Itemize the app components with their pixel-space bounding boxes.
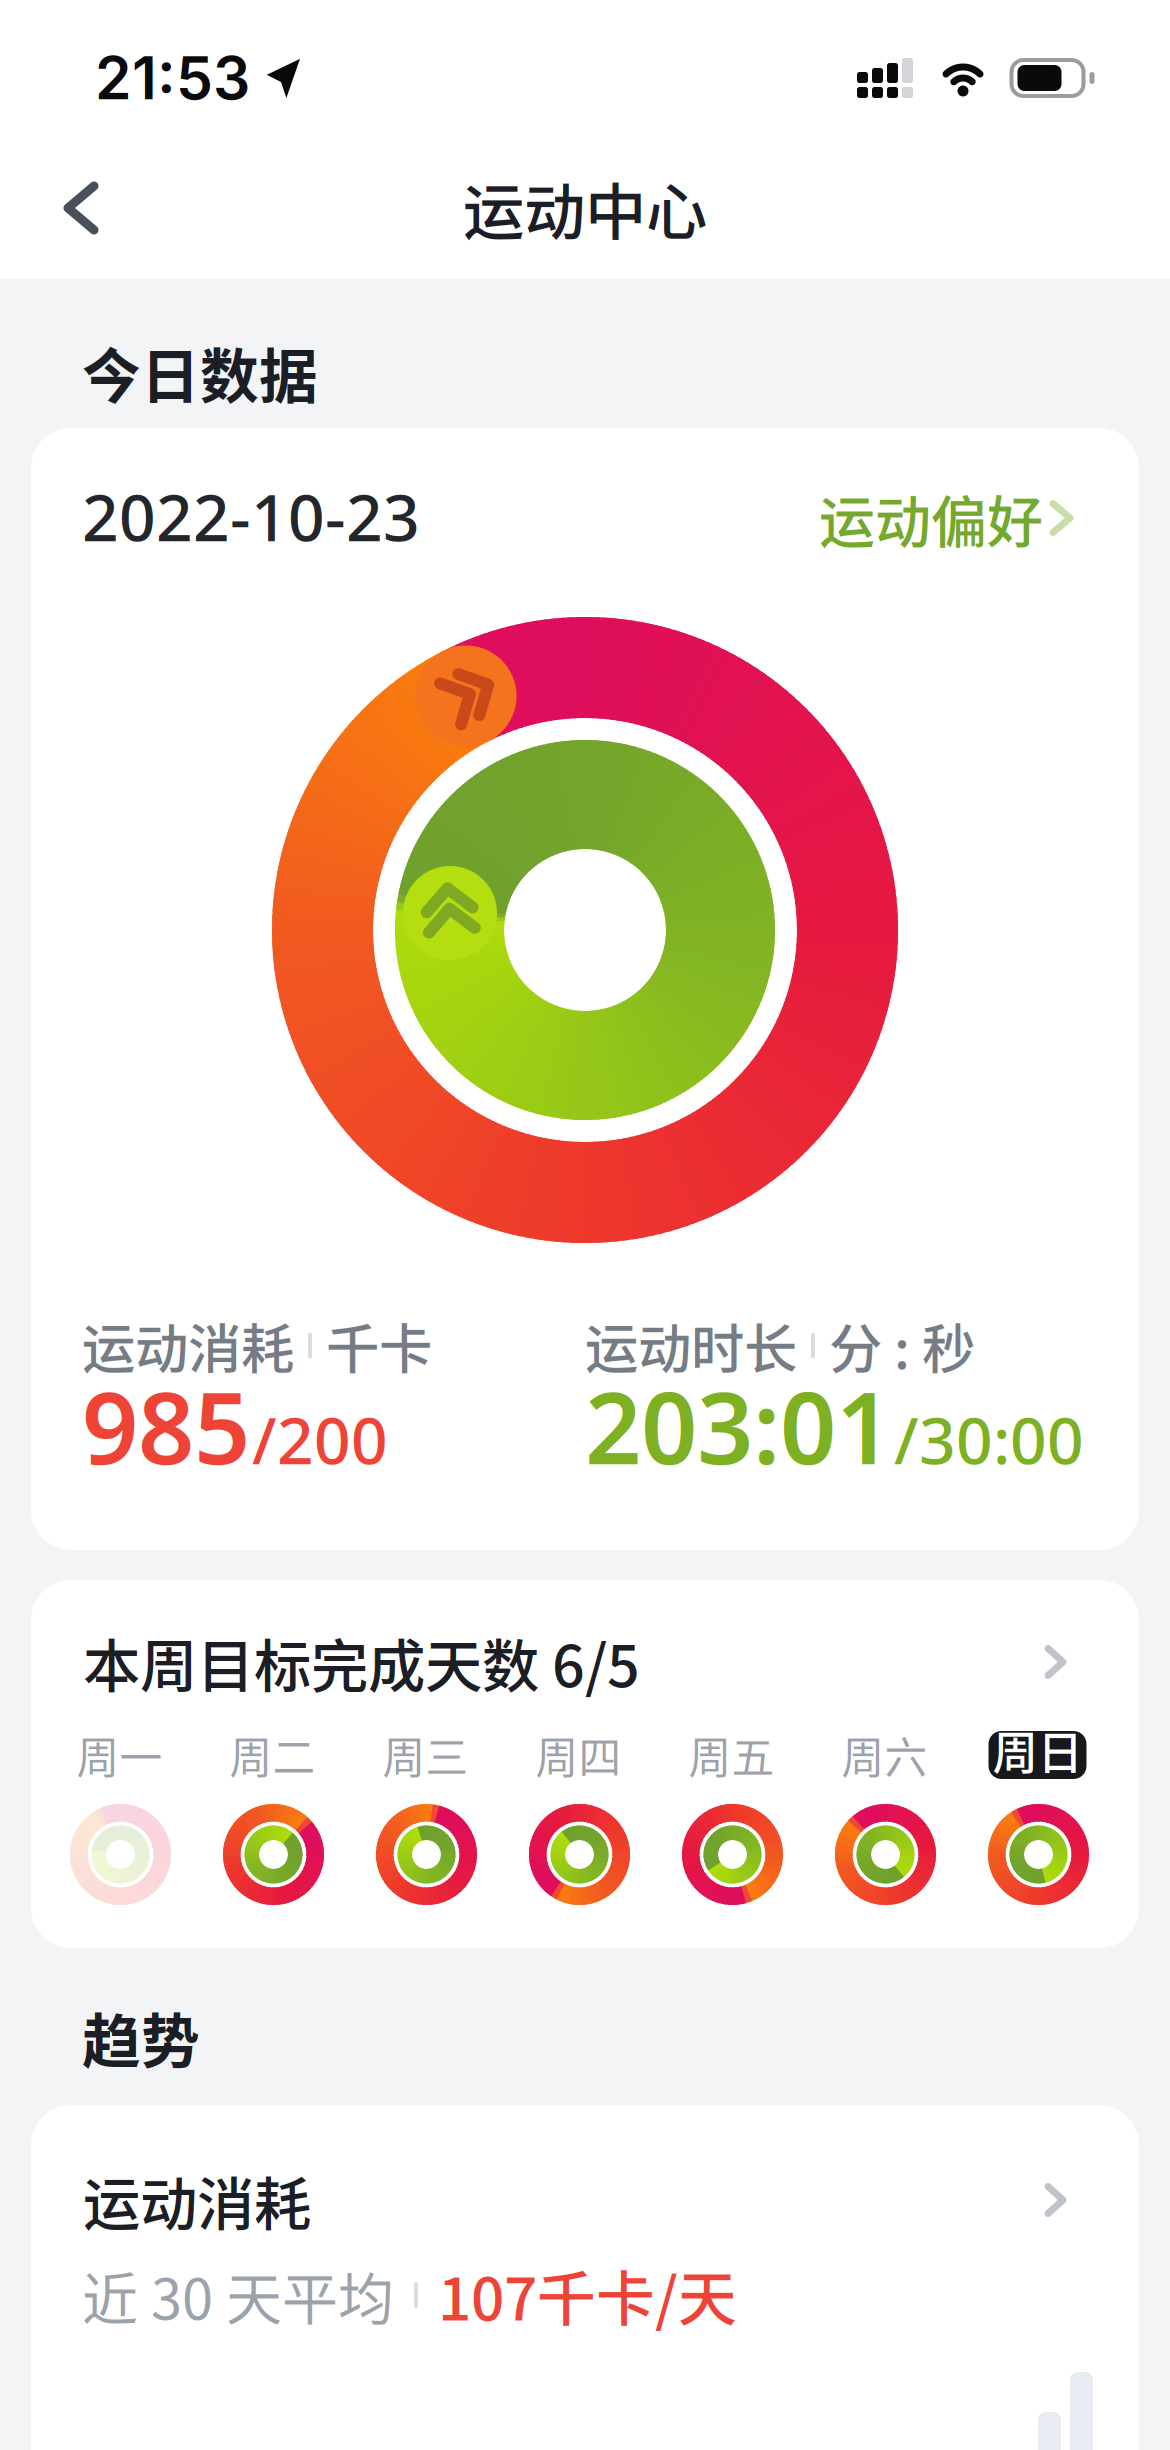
staticText: 周二: [229, 1724, 315, 1786]
staticText: 千卡: [326, 1307, 432, 1384]
staticText: 运动消耗: [82, 1307, 294, 1384]
staticText: /200: [252, 1397, 388, 1482]
staticText: 周五: [688, 1724, 774, 1786]
staticText: 107千卡/天: [438, 2252, 737, 2337]
staticText: 近 30 天平均: [82, 2254, 394, 2336]
staticText: 运动时长: [585, 1307, 797, 1384]
staticText: 周三: [382, 1724, 468, 1786]
staticText: 今日数据: [82, 330, 318, 415]
staticText: 21:53: [95, 42, 250, 113]
button[interactable]: 运动偏好: [819, 477, 1070, 559]
button[interactable]: 运动消耗趋势: [31, 2105, 1139, 2450]
staticText: 周一: [76, 1724, 162, 1786]
staticText: /30:00: [894, 1397, 1084, 1482]
staticText: 985: [82, 1360, 250, 1491]
staticText: 本周目标完成天数 6/5: [83, 1620, 640, 1703]
button[interactable]: Back: [0, 156, 134, 260]
staticText: 运动中心: [463, 164, 707, 252]
staticText: 分 : 秒: [829, 1307, 975, 1384]
staticText: 周四: [535, 1724, 621, 1786]
staticText: 周六: [841, 1724, 927, 1786]
staticText: 趋势: [82, 1995, 200, 2080]
staticText: 运动偏好: [819, 477, 1043, 559]
staticText: 周日: [992, 1717, 1082, 1783]
staticText: 203:01: [585, 1360, 892, 1491]
staticText: 2022-10-23: [82, 474, 420, 559]
staticText: 运动消耗: [83, 2158, 311, 2241]
button[interactable]: 本周目标完成天数 6/5: [31, 1580, 1139, 1948]
